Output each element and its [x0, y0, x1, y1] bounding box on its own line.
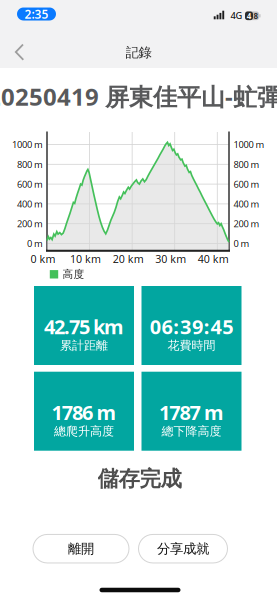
staticText: 400 m [17, 198, 43, 210]
staticText: 400 m [233, 198, 259, 210]
staticText: 1787 m [159, 399, 224, 425]
button[interactable]: 分享成就 [138, 534, 227, 563]
staticText: 8 [253, 10, 258, 21]
staticText: 花費時間 [167, 338, 215, 353]
staticText: 4 [247, 10, 252, 21]
staticText: 高度 [62, 268, 84, 281]
staticText: 42.75 km [44, 313, 124, 340]
staticText: 1000 m [12, 138, 43, 151]
button[interactable]: Back [5, 39, 31, 65]
staticText: 4G [231, 9, 243, 22]
button[interactable]: 離開 [33, 534, 129, 563]
staticText: 30 km [155, 252, 186, 266]
staticText: 0 m [27, 237, 43, 250]
staticText: 600 m [233, 178, 259, 190]
staticText: 06:39:45 [150, 313, 233, 340]
staticText: 20 km [113, 252, 144, 266]
staticText: 2:35 [24, 6, 48, 22]
staticText: 分享成就 [157, 540, 209, 557]
staticText: 總下降高度 [161, 424, 221, 438]
staticText: 1786 m [51, 399, 116, 425]
staticText: 800 m [233, 158, 259, 170]
staticText: 累計距離 [60, 338, 108, 353]
staticText: 200 m [17, 217, 43, 230]
staticText: 0 km [30, 252, 55, 266]
staticText: 10 km [70, 252, 101, 266]
staticText: 40 km [198, 252, 229, 266]
staticText: 總爬升高度 [54, 424, 114, 438]
staticText: 800 m [17, 158, 43, 170]
staticText: 離開 [68, 540, 94, 557]
staticText: 600 m [17, 178, 43, 190]
staticText: 記錄 [125, 44, 151, 61]
staticText: 200 m [233, 217, 259, 230]
staticText: 儲存完成 [97, 466, 181, 492]
staticText: 1000 m [233, 138, 264, 151]
staticText: 0 m [233, 237, 249, 250]
staticText: 20250419 屏東佳平山-虻彈坑 [0, 81, 277, 112]
